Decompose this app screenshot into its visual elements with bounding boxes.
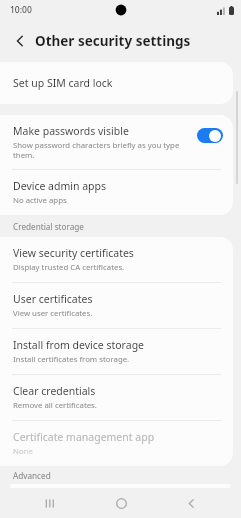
staticText: Certificate management app [13, 430, 155, 444]
button[interactable]: Install from device storage [0, 329, 233, 374]
staticText: Device admin apps [13, 179, 107, 193]
staticText: Display trusted CA certificates. [13, 262, 125, 273]
button[interactable]: Home [101, 488, 141, 518]
staticText: Credential storage [13, 221, 84, 232]
staticText: 10:00 [10, 4, 32, 16]
button[interactable]: Recent apps [30, 488, 70, 518]
staticText: Install certificates from storage. [13, 354, 130, 365]
button[interactable]: Back [171, 488, 211, 518]
button[interactable]: Clear credentials [0, 375, 233, 420]
staticText: Make passwords visible [13, 124, 129, 138]
staticText: Advanced [13, 470, 51, 481]
button[interactable]: User certificates [0, 283, 233, 328]
staticText: View security certificates [13, 246, 134, 260]
button[interactable]: View security certificates [0, 237, 233, 282]
button[interactable]: Certificate management app [0, 421, 233, 466]
staticText: Other security settings [35, 32, 191, 50]
staticText: Install from device storage [13, 338, 145, 352]
button[interactable]: Back [8, 29, 32, 53]
staticText: User certificates [13, 292, 93, 306]
staticText: No active apps [13, 195, 67, 206]
button[interactable]: Make passwords visible [0, 115, 233, 169]
staticText: Show password characters briefly as you … [13, 140, 191, 160]
button[interactable]: Device admin apps [0, 170, 233, 215]
button[interactable]: Make passwords visible toggle [197, 128, 223, 143]
staticText: Clear credentials [13, 384, 96, 398]
staticText: View user certificates. [13, 308, 93, 319]
staticText: None [13, 446, 33, 457]
staticText: Set up SIM card lock [13, 76, 113, 90]
button[interactable]: Set up SIM card lock [0, 62, 233, 104]
staticText: Remove all certificates. [13, 400, 97, 411]
